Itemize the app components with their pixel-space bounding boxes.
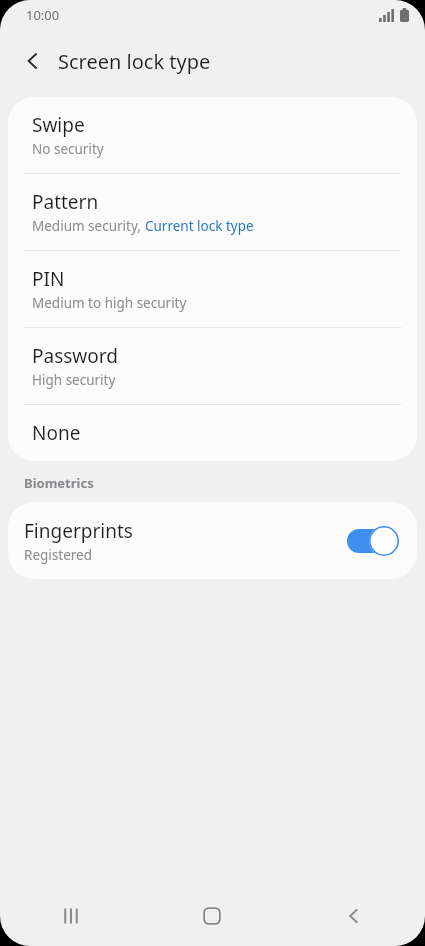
button[interactable]: Recents (0, 886, 141, 946)
button[interactable]: PIN (8, 251, 417, 327)
staticText: No security (32, 140, 104, 158)
button[interactable]: Pattern (8, 174, 417, 250)
button[interactable]: Back (283, 886, 425, 946)
button[interactable]: None (8, 405, 417, 461)
staticText: Medium to high security (32, 294, 187, 312)
button[interactable]: Password (8, 328, 417, 404)
staticText: Pattern (32, 189, 99, 215)
staticText: High security (32, 371, 116, 389)
staticText: Swipe (32, 112, 85, 138)
button[interactable]: Swipe (8, 97, 417, 173)
staticText: Registered (24, 546, 92, 564)
staticText: Screen lock type (58, 48, 211, 75)
button[interactable]: Fingerprints (8, 502, 417, 579)
button[interactable]: Fingerprints toggle (347, 526, 399, 556)
button[interactable]: Back (12, 40, 54, 82)
staticText: None (32, 420, 81, 446)
staticText: Medium security, (32, 217, 145, 235)
staticText: Fingerprints (24, 518, 133, 544)
staticText: PIN (32, 266, 65, 292)
staticText: Current lock type (145, 217, 254, 235)
staticText: Password (32, 343, 118, 369)
staticText: Biometrics (24, 474, 94, 492)
button[interactable]: Home (141, 886, 283, 946)
staticText: 10:00 (26, 6, 60, 24)
